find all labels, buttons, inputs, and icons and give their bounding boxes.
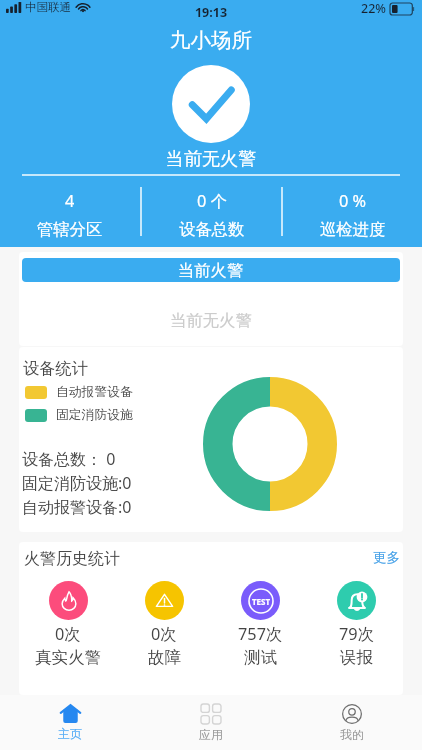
button[interactable]: 当前火警: [22, 258, 400, 282]
button[interactable]: 4: [0, 176, 140, 240]
button[interactable]: 0 个: [142, 176, 281, 240]
staticText: 自动报警设备: [56, 384, 133, 400]
staticText: 管辖分区: [37, 219, 103, 240]
staticText: 22%: [361, 0, 386, 17]
staticText: TEST: [252, 596, 271, 607]
staticText: 中国联通: [25, 0, 71, 14]
staticText: 0次: [55, 623, 81, 645]
staticText: 0 个: [197, 190, 227, 212]
staticText: 设备总数： 0: [22, 448, 116, 470]
button[interactable]: 应用: [140, 695, 281, 750]
staticText: 79次: [339, 623, 374, 645]
staticText: 自动报警设备:0: [22, 496, 132, 518]
staticText: 4: [65, 190, 75, 212]
button[interactable]: 79次: [308, 581, 403, 668]
staticText: 0次: [151, 623, 177, 645]
staticText: 真实火警: [35, 647, 101, 668]
staticText: 误报: [340, 647, 373, 668]
staticText: 757次: [238, 623, 283, 645]
staticText: 九小场所: [0, 27, 422, 53]
staticText: 更多: [373, 549, 400, 566]
staticText: 当前火警: [178, 260, 244, 281]
staticText: 主页: [58, 726, 82, 741]
staticText: 巡检进度: [320, 219, 386, 240]
staticText: 0 %: [339, 190, 367, 212]
staticText: 故障: [148, 647, 181, 668]
staticText: 固定消防设施:0: [22, 472, 132, 494]
button[interactable]: 0 %: [283, 176, 422, 240]
staticText: 当前无火警: [19, 310, 403, 331]
button[interactable]: TEST: [212, 581, 308, 668]
staticText: 测试: [244, 647, 277, 668]
button[interactable]: 主页: [0, 695, 140, 750]
staticText: 19:13: [0, 4, 422, 21]
button[interactable]: 0次: [116, 581, 212, 668]
staticText: 火警历史统计: [24, 549, 120, 569]
staticText: 当前无火警: [0, 147, 422, 170]
staticText: 设备总数: [179, 219, 245, 240]
staticText: 应用: [199, 727, 223, 742]
button[interactable]: 更多: [370, 547, 403, 568]
button[interactable]: 0次: [20, 581, 116, 668]
staticText: 我的: [340, 727, 364, 742]
staticText: 固定消防设施: [56, 407, 133, 423]
button[interactable]: 我的: [281, 695, 422, 750]
staticText: 设备统计: [23, 358, 88, 378]
